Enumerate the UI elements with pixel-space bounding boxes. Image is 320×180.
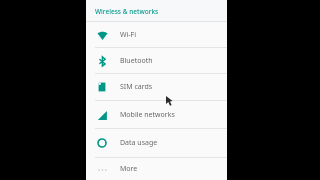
button[interactable]: More [86,158,227,180]
other: Bluetooth [97,56,108,67]
staticText: SIM cards [120,82,153,92]
other: More [97,164,108,175]
other: Mobile networks [97,110,108,121]
button[interactable]: Data usage [86,129,227,157]
staticText: Data usage [120,138,158,148]
staticText: Bluetooth [120,56,153,66]
staticText: More [120,164,138,174]
other: SIM cards [97,82,107,92]
button[interactable]: Mobile networks [86,101,227,128]
button[interactable]: SIM cards [86,74,227,100]
staticText: Wireless & networks [95,7,159,16]
staticText: Wi-Fi [120,30,137,40]
staticText: Mobile networks [120,110,175,120]
button[interactable]: Bluetooth [86,48,227,73]
button[interactable]: Wi-Fi [86,22,227,47]
other: Data usage [97,138,107,148]
other: Wi-Fi [97,30,108,41]
